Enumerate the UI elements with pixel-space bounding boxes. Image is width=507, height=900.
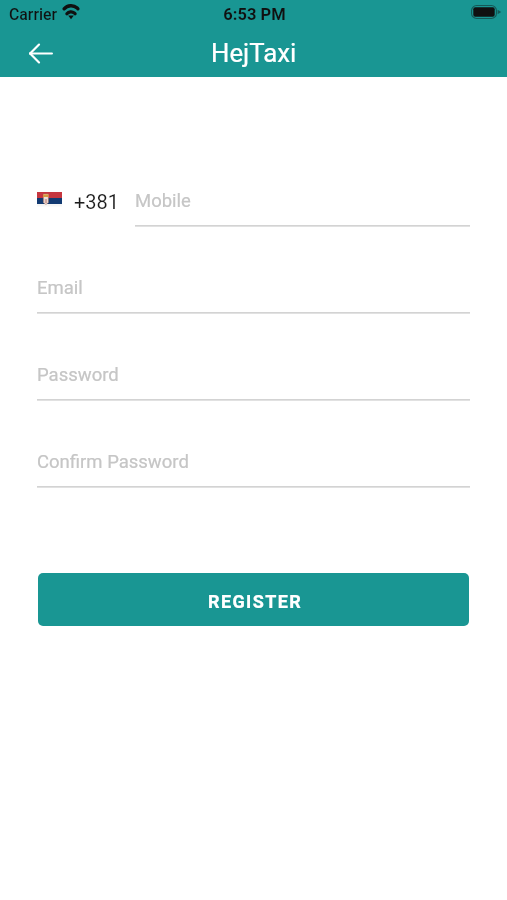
staticText: Mobile [135, 190, 191, 212]
staticText: REGISTER [208, 591, 303, 612]
button[interactable]: REGISTER [38, 573, 469, 626]
staticText: Password [37, 364, 119, 386]
staticText: Confirm Password [37, 451, 189, 473]
staticText: Email [37, 277, 83, 299]
button[interactable]: Back [21, 33, 61, 73]
staticText: +381 [74, 190, 120, 213]
staticText: 6:53 PM [223, 5, 286, 24]
staticText: HejTaxi [211, 38, 297, 68]
staticText: Carrier [9, 5, 58, 24]
